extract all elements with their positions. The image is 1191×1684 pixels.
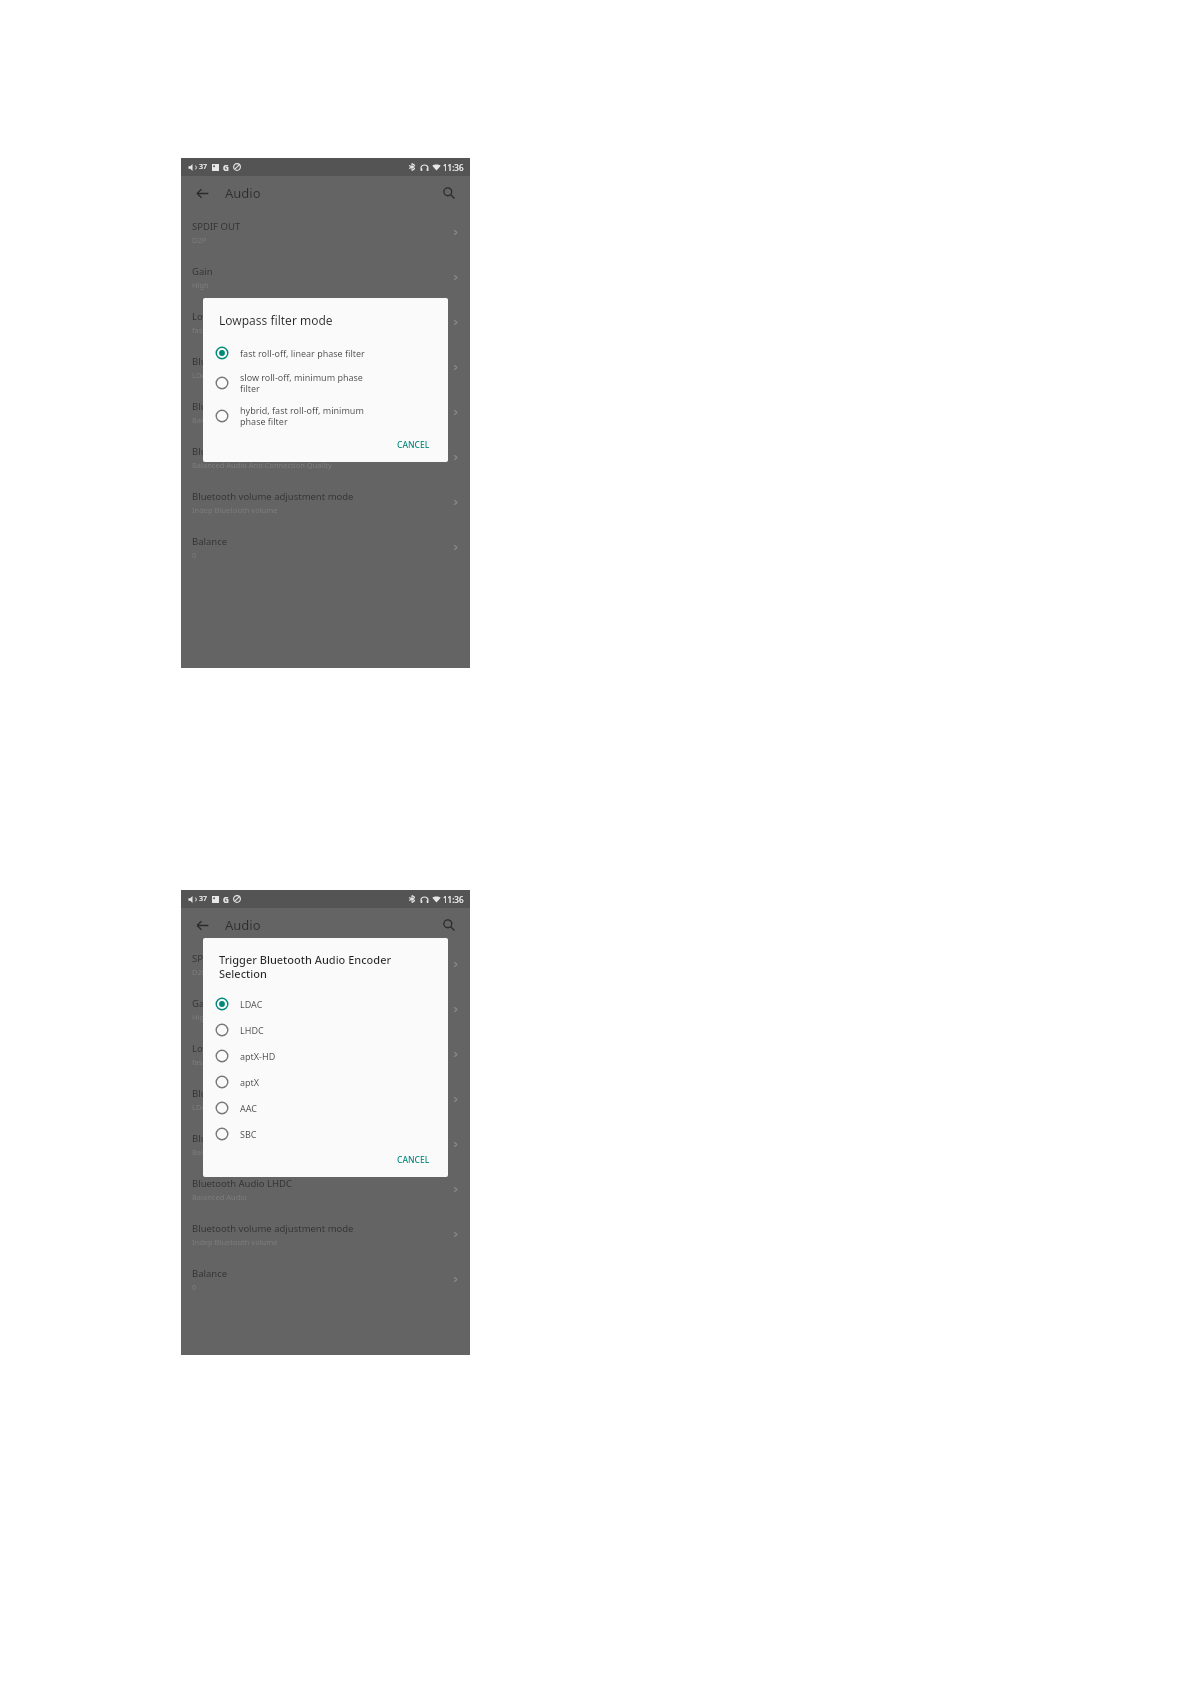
- staticText: Gain: [192, 997, 213, 1010]
- button[interactable]: Gain: [181, 987, 470, 1032]
- staticText: Indep Bluetooth volume: [192, 1237, 278, 1247]
- button[interactable]: hybrid, fast roll-off, minimum phase fil…: [203, 399, 448, 432]
- staticText: LDAC: [192, 1102, 211, 1112]
- staticText: LDAC: [240, 998, 263, 1010]
- staticText: Balanced: [192, 415, 225, 425]
- staticText: Lowpass filter mode: [192, 310, 282, 323]
- button[interactable]: Bluetooth volume adjustment mode: [181, 480, 470, 525]
- button[interactable]: Lowpass filter mode: [181, 1032, 470, 1077]
- button[interactable]: aptX: [203, 1069, 448, 1095]
- staticText: LHDC: [240, 1024, 264, 1036]
- button[interactable]: Gain: [181, 255, 470, 300]
- staticText: Balance: [192, 535, 228, 548]
- staticText: Balanced Audio: [192, 1192, 247, 1202]
- staticText: G: [223, 894, 229, 905]
- button[interactable]: Bluetooth Audio Codec: [181, 345, 470, 390]
- staticText: slow roll-off, minimum phase filter: [240, 371, 363, 394]
- staticText: SBC: [240, 1128, 257, 1140]
- button[interactable]: Back: [191, 914, 213, 936]
- staticText: Balanced: [192, 1147, 225, 1157]
- staticText: Bluetooth Audio LHDC Encoder: Playba..: [192, 445, 371, 458]
- staticText: SPDIF OUT: [192, 220, 241, 233]
- staticText: LDAC: [192, 370, 211, 380]
- staticText: Balance: [192, 1267, 228, 1280]
- button[interactable]: fast roll-off, linear phase filter: [203, 340, 448, 366]
- staticText: aptX-HD: [240, 1050, 276, 1062]
- staticText: High: [192, 1012, 209, 1022]
- button[interactable]: SPDIF OUT: [181, 210, 470, 255]
- button[interactable]: SPDIF OUT: [181, 942, 470, 987]
- button[interactable]: LHDC: [203, 1017, 448, 1043]
- staticText: Bluetooth Audio Codec: [192, 355, 295, 368]
- button[interactable]: aptX-HD: [203, 1043, 448, 1069]
- staticText: Bluetooth volume adjustment mode: [192, 1222, 354, 1235]
- button[interactable]: Bluetooth Audio LHDC: [181, 1167, 470, 1212]
- button[interactable]: Bluetooth Audio LDAC: [181, 1122, 470, 1167]
- staticText: D2P: [192, 967, 207, 977]
- staticText: Bluetooth Audio LDAC Codec: [192, 400, 321, 413]
- button[interactable]: SBC: [203, 1121, 448, 1147]
- staticText: Bluetooth Audio LHDC: [192, 1177, 292, 1190]
- staticText: G: [223, 162, 229, 173]
- staticText: fast roll-off: [192, 1057, 231, 1067]
- button[interactable]: Search: [438, 182, 460, 204]
- button[interactable]: Back: [191, 182, 213, 204]
- staticText: fast roll-off: [192, 325, 231, 335]
- staticText: 37: [199, 894, 208, 904]
- button[interactable]: Bluetooth Audio LDAC Codec: [181, 390, 470, 435]
- staticText: fast roll-off, linear phase filter: [240, 347, 365, 359]
- button[interactable]: LDAC: [203, 991, 448, 1017]
- staticText: Audio: [225, 916, 261, 934]
- staticText: Indep Bluetooth volume: [192, 505, 278, 515]
- button[interactable]: Bluetooth volume adjustment mode: [181, 1212, 470, 1257]
- staticText: Bluetooth Audio LDAC: [192, 1132, 291, 1145]
- button[interactable]: Bluetooth Audio LHDC Encoder: Playba..: [181, 435, 470, 480]
- staticText: aptX: [240, 1076, 260, 1088]
- button[interactable]: CANCEL: [391, 1151, 436, 1169]
- staticText: 0: [192, 1282, 197, 1292]
- staticText: Gain: [192, 265, 213, 278]
- staticText: Balanced Audio And Connection Quality: [192, 460, 332, 470]
- button[interactable]: AAC: [203, 1095, 448, 1121]
- staticText: 11:36: [443, 894, 464, 905]
- staticText: 37: [199, 162, 208, 172]
- button[interactable]: Search: [438, 914, 460, 936]
- staticText: 11:36: [443, 162, 464, 173]
- staticText: Bluetooth volume adjustment mode: [192, 490, 354, 503]
- staticText: Lowpass filter mode: [219, 312, 333, 328]
- staticText: Audio: [225, 184, 261, 202]
- staticText: D2P: [192, 235, 207, 245]
- staticText: CANCEL: [397, 439, 430, 451]
- staticText: 0: [192, 550, 197, 560]
- staticText: High: [192, 280, 209, 290]
- staticText: Lowpass filter mode: [192, 1042, 282, 1055]
- button[interactable]: Lowpass filter mode: [181, 300, 470, 345]
- staticText: SPDIF OUT: [192, 952, 241, 965]
- button[interactable]: Bluetooth Audio Codec: [181, 1077, 470, 1122]
- button[interactable]: slow roll-off, minimum phase filter: [203, 366, 448, 399]
- staticText: CANCEL: [397, 1154, 430, 1166]
- staticText: Bluetooth Audio Codec: [192, 1087, 295, 1100]
- staticText: Trigger Bluetooth Audio Encoder Selectio…: [219, 952, 392, 981]
- staticText: hybrid, fast roll-off, minimum phase fil…: [240, 404, 364, 427]
- button[interactable]: CANCEL: [391, 436, 436, 454]
- staticText: AAC: [240, 1102, 258, 1114]
